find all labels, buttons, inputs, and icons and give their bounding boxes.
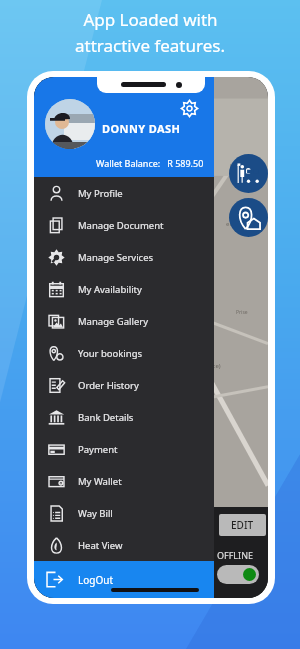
staticText: Wallet Balance: R 589.50	[96, 157, 204, 169]
staticText: elsi	[226, 220, 236, 228]
button[interactable]: LogOut	[34, 561, 214, 598]
button[interactable]: Order History	[34, 369, 214, 401]
button[interactable]	[45, 99, 95, 149]
staticText: Order History	[78, 379, 139, 392]
staticText: Your bookings	[78, 347, 143, 360]
staticText: Manage Services	[78, 251, 154, 264]
staticText: Group (Head Office)	[184, 354, 221, 370]
button[interactable]: Payment	[34, 433, 214, 465]
staticText: Emergency Contact	[78, 571, 165, 584]
button[interactable]: My Profile	[34, 177, 214, 209]
button[interactable]: Saved places	[229, 198, 268, 237]
button[interactable]: Toggle online status	[217, 565, 259, 584]
button[interactable]: Way Bill	[34, 497, 214, 529]
staticText: My Wallet	[78, 475, 122, 488]
button[interactable]: Emergency Contact	[34, 561, 214, 593]
button[interactable]: EDIT	[219, 514, 266, 536]
staticText: Bank Details	[78, 411, 134, 424]
button[interactable]: Manage Services	[34, 241, 214, 273]
staticText: Manage Document	[78, 219, 164, 232]
button[interactable]: Bank Details	[34, 401, 214, 433]
button[interactable]: Manage Gallery	[34, 305, 214, 337]
button[interactable]: Heat View	[34, 529, 214, 561]
staticText: App Loaded with	[83, 8, 218, 31]
staticText: Hes	[230, 163, 239, 170]
button[interactable]: My Availability	[34, 273, 214, 305]
staticText: EDIT	[231, 518, 254, 532]
staticText: DONNY DASH	[102, 121, 181, 136]
button[interactable]: Manage Document	[34, 209, 214, 241]
staticText: attractive features.	[75, 34, 225, 57]
button[interactable]: Your bookings	[34, 337, 214, 369]
button[interactable]: My Wallet	[34, 465, 214, 497]
staticText: Heat View	[78, 539, 123, 552]
staticText: My Profile	[78, 187, 123, 200]
staticText: Payment	[78, 443, 118, 456]
staticText: Prise	[236, 309, 248, 316]
button[interactable]: Book a ride	[229, 154, 268, 193]
staticText: OFFLINE	[217, 549, 253, 561]
staticText: Way Bill	[78, 507, 113, 520]
staticText: Manage Gallery	[78, 315, 149, 328]
button[interactable]: Settings	[176, 95, 202, 121]
staticText: LogOut	[78, 573, 114, 587]
staticText: My Availability	[78, 283, 142, 296]
